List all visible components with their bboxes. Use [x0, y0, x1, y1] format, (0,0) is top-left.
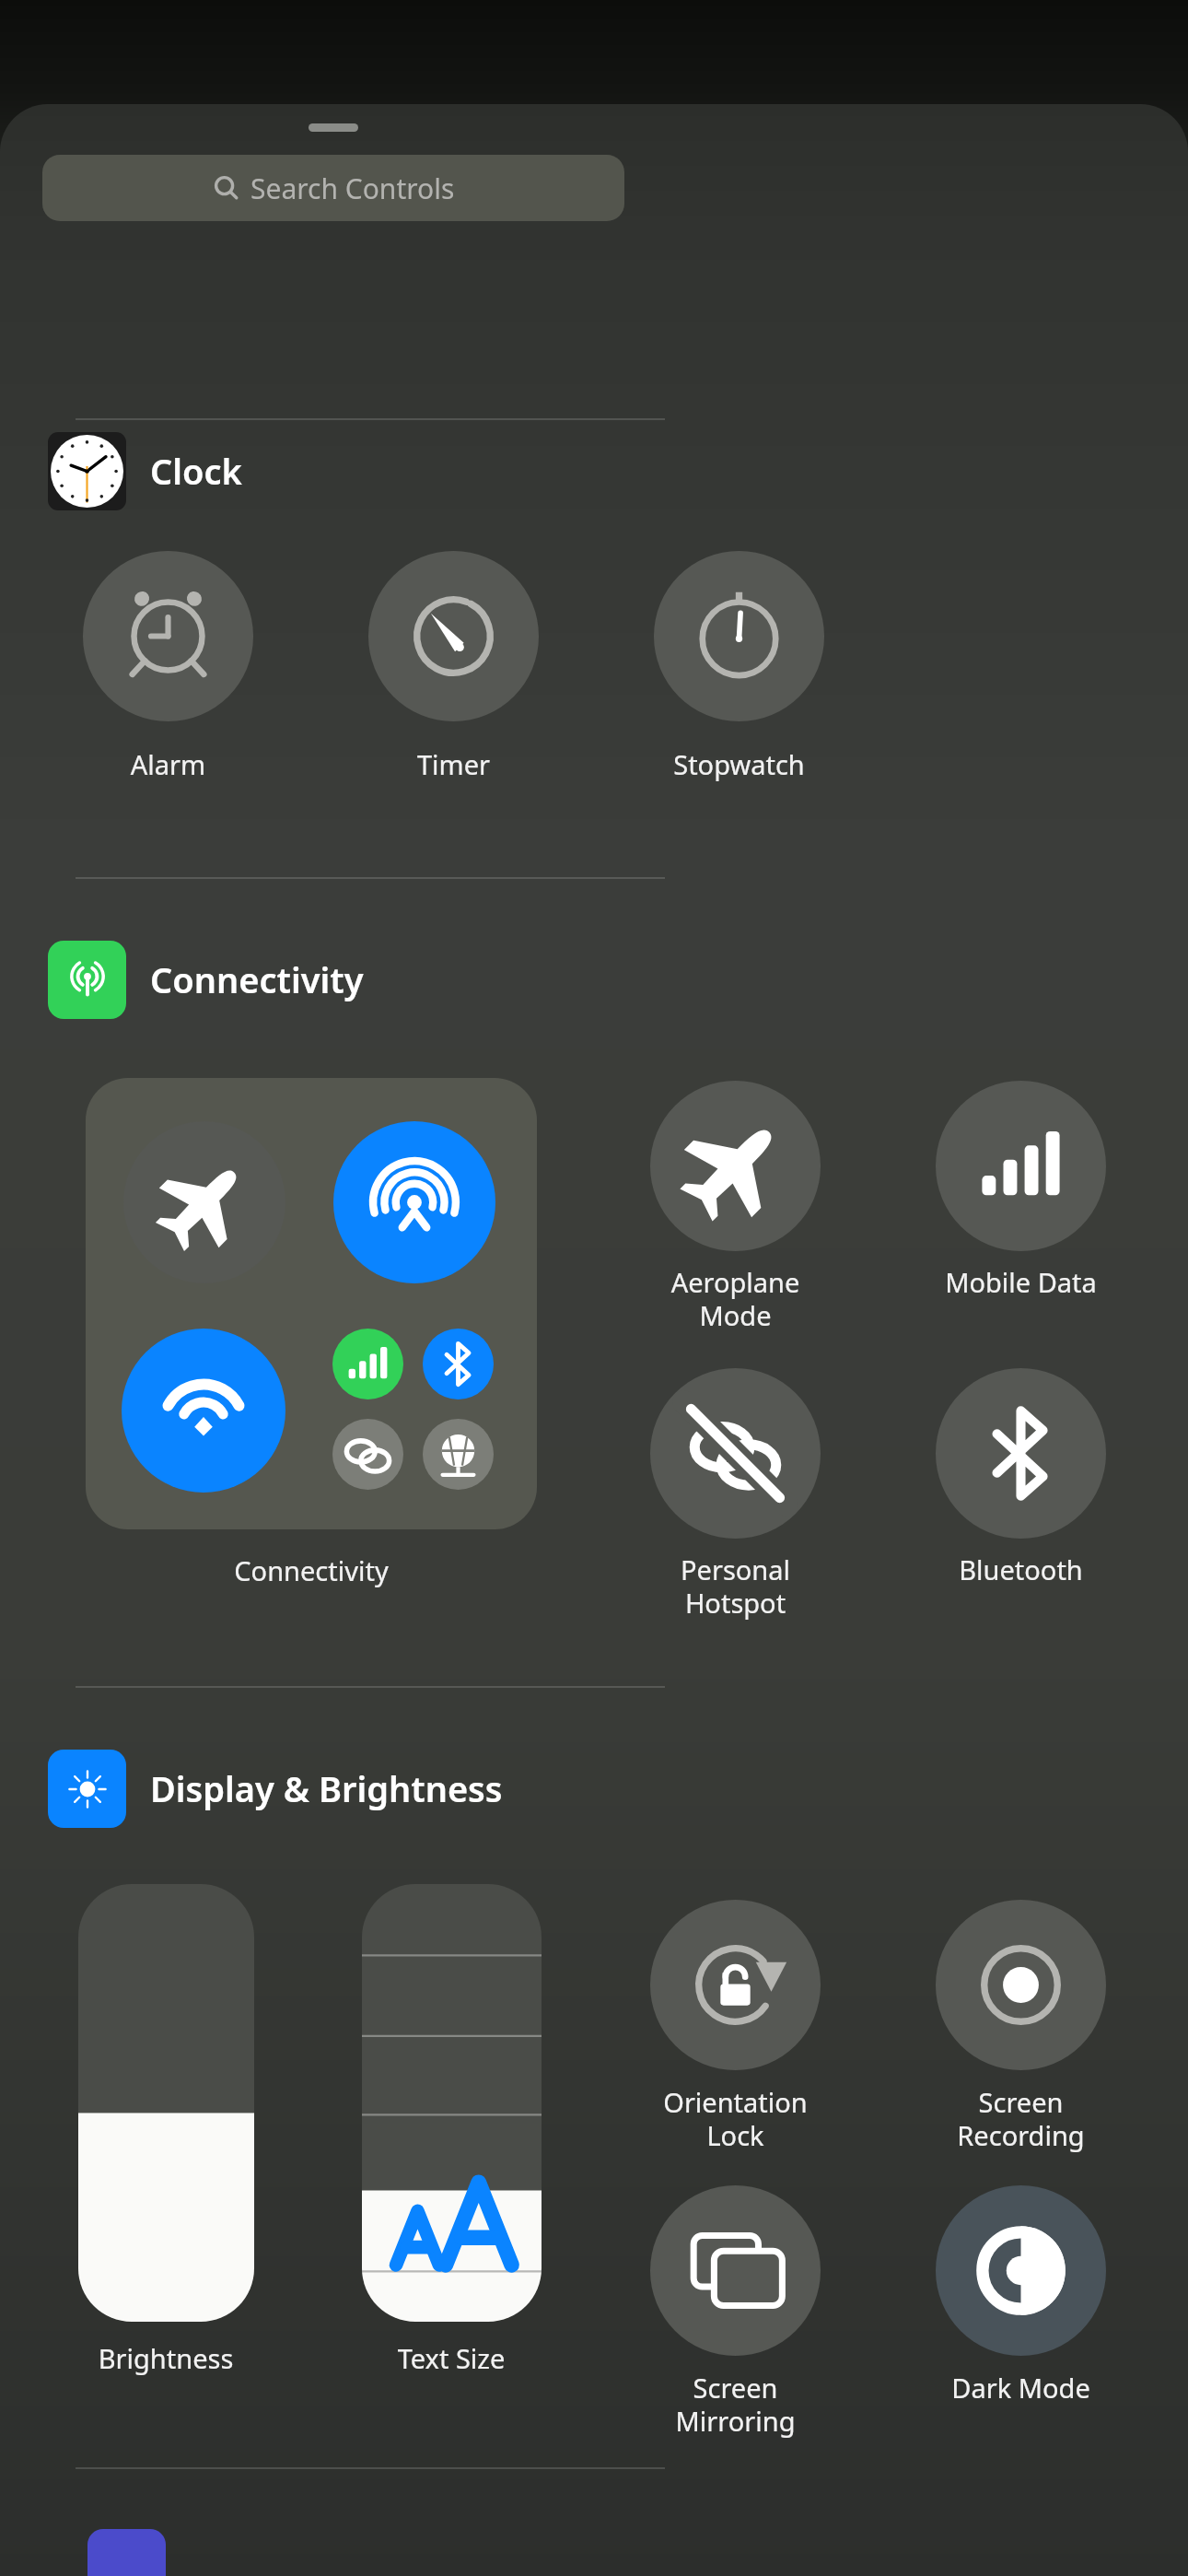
- staticText: Dark Mode: [877, 2370, 1165, 2406]
- button[interactable]: Mobile Data: [332, 1329, 403, 1399]
- button[interactable]: Personal Hotspot: [332, 1419, 403, 1490]
- button[interactable]: AirDrop: [333, 1121, 495, 1283]
- button[interactable]: Timer: [368, 551, 539, 721]
- staticText: Display & Brightness: [150, 1764, 503, 1812]
- staticText: Stopwatch: [595, 746, 883, 782]
- button[interactable]: Mobile Data: [936, 1081, 1106, 1251]
- staticText: Connectivity: [150, 955, 364, 1003]
- staticText: Mobile Data: [877, 1264, 1165, 1300]
- button[interactable]: Bluetooth: [936, 1368, 1106, 1539]
- button[interactable]: Stopwatch: [654, 551, 824, 721]
- button[interactable]: [78, 1884, 254, 2322]
- button[interactable]: Search Controls: [42, 155, 624, 221]
- button[interactable]: Orientation Lock: [650, 1900, 821, 2070]
- button[interactable]: Dark Mode: [936, 2185, 1106, 2356]
- button[interactable]: [362, 1884, 542, 2322]
- staticText: Personal Hotspot: [591, 1551, 879, 1622]
- button[interactable]: Bluetooth: [423, 1329, 494, 1399]
- button[interactable]: Connectivity: [86, 1078, 537, 1529]
- staticText: Aeroplane Mode: [591, 1264, 879, 1334]
- staticText: Clock: [150, 447, 242, 495]
- button[interactable]: Screen Mirroring: [650, 2185, 821, 2356]
- staticText: Timer: [309, 746, 598, 782]
- staticText: Search Controls: [250, 170, 455, 207]
- button[interactable]: Personal Hotspot: [650, 1368, 821, 1539]
- button[interactable]: Aeroplane Mode: [123, 1121, 285, 1283]
- staticText: Alarm: [24, 746, 312, 782]
- staticText: Brightness: [28, 2340, 304, 2376]
- button[interactable]: Screen Recording: [936, 1900, 1106, 2070]
- staticText: Orientation Lock: [591, 2084, 879, 2154]
- button[interactable]: Alarm: [83, 551, 253, 721]
- staticText: Screen Recording: [877, 2084, 1165, 2154]
- staticText: Screen Mirroring: [591, 2370, 879, 2440]
- staticText: Connectivity: [86, 1552, 537, 1588]
- button[interactable]: Aeroplane Mode: [650, 1081, 821, 1251]
- button[interactable]: Connectivity: [48, 937, 364, 1022]
- button[interactable]: VPN: [423, 1419, 494, 1490]
- button[interactable]: Display & Brightness: [48, 1746, 503, 1831]
- staticText: Text Size: [313, 2340, 589, 2376]
- button[interactable]: Clock: [48, 428, 242, 513]
- staticText: Bluetooth: [877, 1551, 1165, 1587]
- button[interactable]: Wi‑Fi: [122, 1329, 285, 1493]
